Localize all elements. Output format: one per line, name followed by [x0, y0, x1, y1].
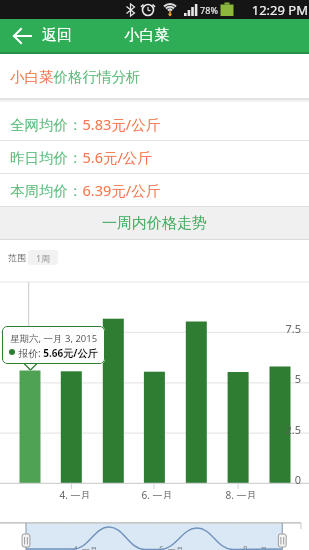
staticText: 5	[251, 371, 301, 383]
staticText: 8. 一月	[211, 488, 271, 499]
staticText: 0	[251, 472, 301, 484]
button[interactable]: 全网均价：5.83元/公斤	[0, 107, 309, 140]
staticText: 4. 一月	[45, 488, 105, 499]
staticText: 昨日均价：5.6元/公斤	[10, 147, 300, 167]
button[interactable]: 返回	[0, 19, 90, 52]
staticText: 一周内价格走势	[0, 214, 309, 233]
staticText: 8. 一月	[243, 544, 287, 550]
staticText: 本周均价：6.39元/公斤	[10, 180, 300, 200]
staticText: 报价: 5.66元/公斤	[18, 346, 105, 360]
staticText: 小白菜	[92, 26, 202, 45]
staticText: 6. 一月	[127, 488, 187, 499]
staticText: 范围	[8, 252, 30, 263]
staticText: 1周	[36, 252, 51, 264]
button[interactable]: 一周内价格走势	[0, 206, 309, 240]
staticText: 星期六, 一月 3, 2015	[10, 332, 105, 345]
button[interactable]: 1周	[28, 250, 58, 265]
staticText: 2.5	[251, 422, 301, 434]
staticText: 4. 一月	[73, 544, 113, 550]
button[interactable]: 昨日均价：5.6元/公斤	[0, 141, 309, 173]
staticText: 返回	[42, 26, 72, 45]
staticText: 全网均价：5.83元/公斤	[10, 114, 300, 134]
button[interactable]: 小白菜价格行情分析	[0, 55, 309, 98]
staticText: 78%	[196, 4, 222, 16]
staticText: 小白菜价格行情分析	[10, 68, 300, 86]
button[interactable]: 本周均价：6.39元/公斤	[0, 174, 309, 206]
staticText: 6. 一月	[159, 544, 199, 550]
staticText: 12:29 PM	[236, 1, 308, 19]
staticText: 7.5	[251, 321, 301, 333]
